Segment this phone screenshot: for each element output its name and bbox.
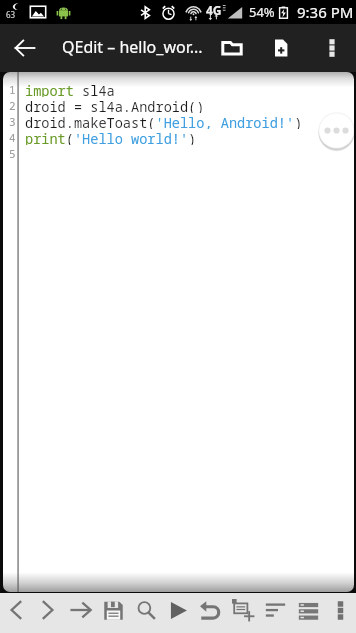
button[interactable]: Undo xyxy=(194,593,226,631)
button[interactable]: Indent xyxy=(65,593,97,631)
staticText: 4 xyxy=(9,130,16,145)
staticText: 5 xyxy=(9,146,16,161)
staticText: 4G xyxy=(206,2,222,18)
staticText: QEdit – hello_wor... xyxy=(62,36,203,58)
staticText: 2 xyxy=(9,98,16,113)
button[interactable]: Save xyxy=(97,593,129,631)
button[interactable]: More options xyxy=(324,593,356,631)
button[interactable]: Back xyxy=(3,26,47,70)
button[interactable]: Search xyxy=(130,593,162,631)
staticText: import sl4a xyxy=(25,81,115,97)
staticText: 54% xyxy=(249,3,275,21)
button[interactable]: Next xyxy=(32,593,64,631)
button[interactable]: New tab xyxy=(227,593,259,631)
button[interactable]: Run xyxy=(162,593,194,631)
staticText: 9:36 PM xyxy=(297,2,354,22)
staticText: 1 xyxy=(9,82,16,97)
button[interactable]: More options xyxy=(312,28,352,68)
staticText: droid.makeToast('Hello, Android!') xyxy=(25,113,303,129)
button[interactable]: Open folder xyxy=(210,26,254,70)
staticText: 3 xyxy=(9,114,16,129)
button[interactable]: Format xyxy=(259,593,291,631)
button[interactable]: List xyxy=(292,593,324,631)
staticText: 63 xyxy=(6,9,16,20)
button[interactable]: New file xyxy=(259,26,303,70)
button[interactable]: Previous xyxy=(0,593,32,631)
staticText: droid = sl4a.Android() xyxy=(25,97,205,113)
staticText: print('Hello world!') xyxy=(25,129,197,145)
button[interactable]: More actions xyxy=(316,110,354,151)
